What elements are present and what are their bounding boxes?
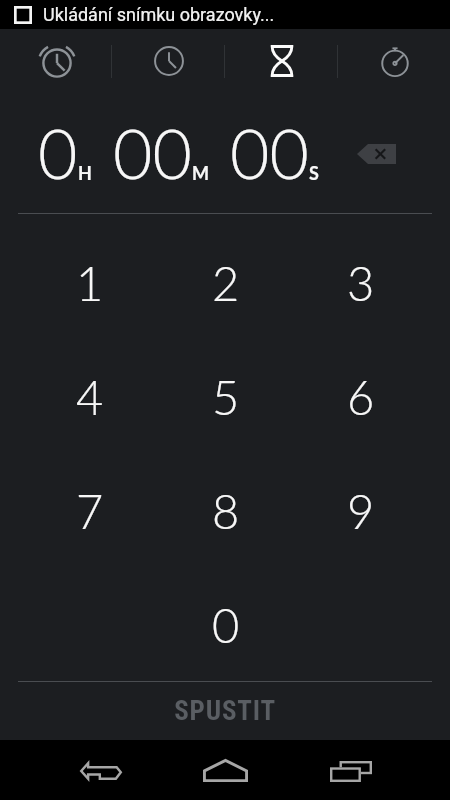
button[interactable]: SPUSTIT [0, 682, 450, 740]
staticText: 7 [76, 483, 104, 539]
button[interactable]: 6 [293, 340, 428, 454]
button[interactable]: 1 [22, 226, 158, 340]
staticText: 9 [347, 483, 375, 539]
staticText: Ukládání snímku obrazovky... [43, 4, 275, 25]
button[interactable]: Home [163, 740, 288, 800]
staticText: 6 [347, 369, 375, 425]
staticText: 0 [212, 597, 240, 653]
staticText: 1 [76, 255, 104, 311]
staticText: S [309, 162, 319, 184]
button[interactable]: 4 [22, 340, 158, 454]
staticText: H [78, 162, 92, 184]
staticText: M [192, 162, 210, 184]
button[interactable]: 3 [293, 226, 428, 340]
button[interactable]: Recent apps [288, 740, 413, 800]
button[interactable]: Timer [225, 29, 337, 93]
staticText: 3 [347, 255, 375, 311]
staticText: SPUSTIT [174, 695, 276, 727]
button[interactable]: 0 [158, 568, 293, 682]
button[interactable]: 5 [158, 340, 293, 454]
button[interactable] [293, 568, 428, 682]
staticText: 5 [212, 369, 240, 425]
staticText: 00 [113, 112, 192, 194]
button[interactable]: Alarms [0, 29, 111, 93]
button[interactable]: 7 [22, 454, 158, 568]
button[interactable]: Delete [357, 144, 396, 164]
button[interactable]: 2 [158, 226, 293, 340]
button[interactable]: Stopwatch [338, 29, 450, 93]
button[interactable] [22, 568, 158, 682]
staticText: 00 [230, 112, 309, 194]
button[interactable]: 9 [293, 454, 428, 568]
staticText: 0 [38, 112, 78, 194]
button[interactable]: 8 [158, 454, 293, 568]
staticText: 2 [212, 255, 240, 311]
button[interactable]: Clock [112, 29, 224, 93]
staticText: 8 [212, 483, 240, 539]
button[interactable]: Back [38, 740, 163, 800]
staticText: 4 [76, 369, 104, 425]
